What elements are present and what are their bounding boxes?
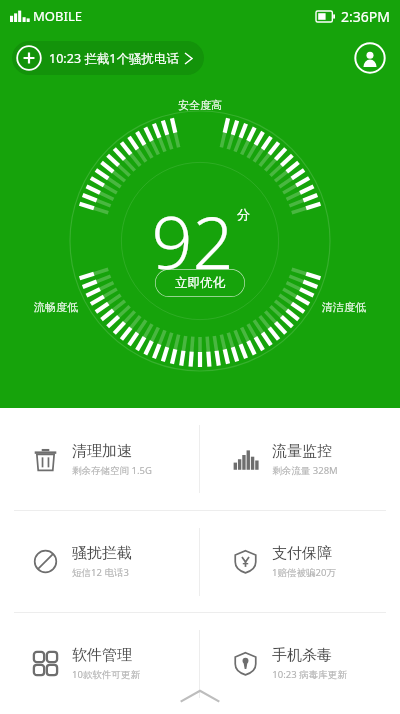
button[interactable]: 10:23 拦截1个骚扰电话 [12, 41, 204, 75]
staticText: 10款软件可更新 [72, 668, 140, 681]
button[interactable]: Expand [177, 686, 223, 706]
staticText: 软件管理 [72, 646, 132, 665]
staticText: MOBILE [33, 7, 82, 25]
staticText: 清理加速 [72, 442, 132, 461]
button[interactable]: 支付保障 [200, 511, 400, 612]
button[interactable]: Account [354, 42, 386, 74]
staticText: 骚扰拦截 [72, 544, 132, 563]
staticText: 立即优化 [175, 275, 225, 291]
staticText: 10:23 拦截1个骚扰电话 [49, 50, 179, 67]
button[interactable]: 软件管理 [0, 613, 200, 714]
button[interactable]: 流量监控 [200, 408, 400, 510]
button[interactable]: 骚扰拦截 [0, 511, 200, 612]
staticText: 分 [237, 206, 250, 222]
staticText: 安全度高 [178, 98, 222, 112]
staticText: 2:36PM [341, 7, 390, 26]
staticText: 清洁度低 [322, 300, 366, 314]
staticText: 92 [151, 192, 234, 290]
staticText: 手机杀毒 [272, 646, 332, 665]
staticText: 短信12 电话3 [72, 566, 129, 579]
button[interactable]: 手机杀毒 [200, 613, 400, 714]
button[interactable]: 清理加速 [0, 408, 200, 510]
staticText: 剩余存储空间 1.5G [72, 464, 152, 477]
staticText: 流畅度低 [34, 300, 78, 314]
staticText: 10:23 病毒库更新 [272, 668, 347, 681]
staticText: 剩余流量 328M [272, 464, 338, 477]
staticText: 1赔偿被骗20万 [272, 566, 336, 579]
staticText: 流量监控 [272, 442, 332, 461]
button[interactable]: 立即优化 [155, 269, 245, 297]
staticText: 支付保障 [272, 544, 332, 563]
